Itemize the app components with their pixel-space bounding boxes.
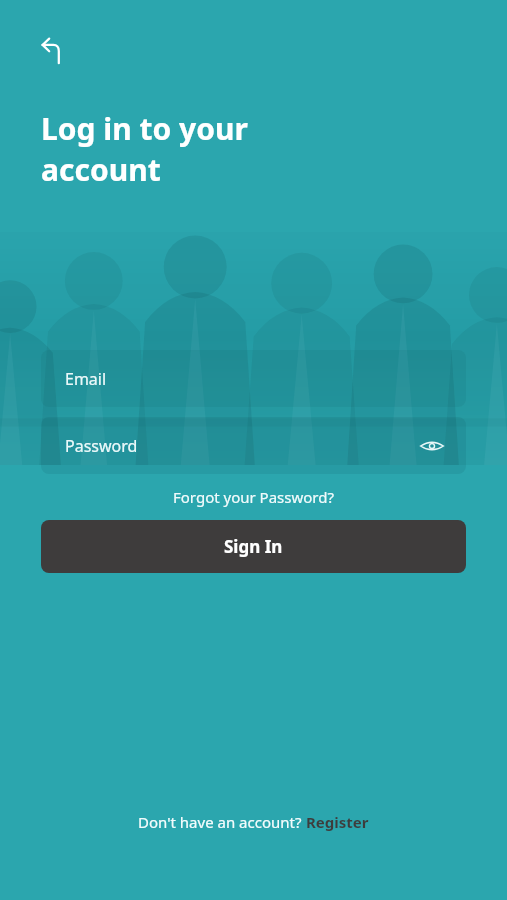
staticText: Forgot your Password?: [173, 487, 334, 507]
staticText: Register: [306, 812, 369, 832]
button[interactable]: Back: [30, 26, 78, 74]
staticText: Log in to your account: [41, 108, 248, 190]
button[interactable]: Forgot your Password?: [165, 484, 342, 510]
staticText: Email: [65, 368, 107, 390]
staticText: Sign In: [224, 535, 283, 558]
button[interactable]: Register: [306, 812, 369, 832]
button[interactable]: Email: [41, 350, 466, 407]
button[interactable]: Show password: [412, 426, 452, 466]
button[interactable]: Password: [41, 417, 466, 474]
staticText: Don't have an account?: [138, 812, 306, 832]
button[interactable]: Sign In: [41, 520, 466, 573]
staticText: Password: [65, 435, 138, 457]
